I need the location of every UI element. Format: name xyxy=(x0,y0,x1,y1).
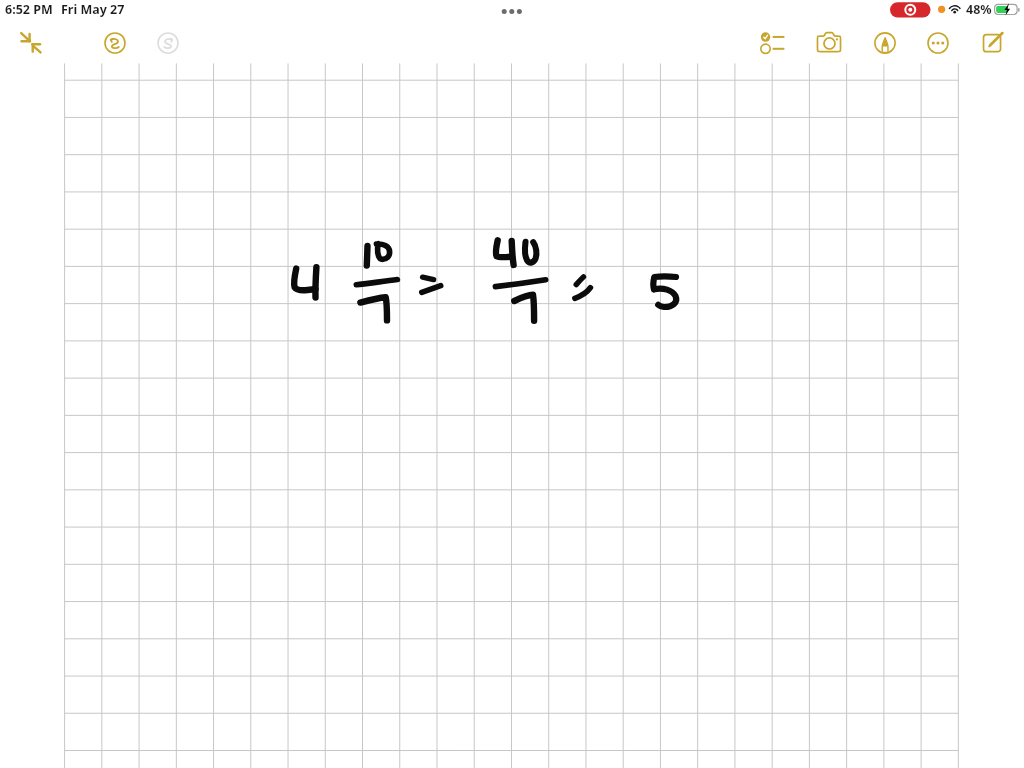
button[interactable]: Undo xyxy=(104,32,126,54)
button[interactable]: Redo xyxy=(157,32,179,54)
button[interactable]: Exit full screen xyxy=(17,31,41,55)
button[interactable]: Pen xyxy=(874,32,896,54)
staticText: 48% xyxy=(966,1,992,18)
button[interactable]: Compose xyxy=(981,31,1004,54)
staticText: Fri May 27 xyxy=(61,1,125,18)
button[interactable]: More xyxy=(927,32,949,54)
button[interactable]: Checklist xyxy=(760,32,783,55)
button[interactable]: Note page xyxy=(0,0,1024,768)
button[interactable]: Camera xyxy=(817,31,841,55)
staticText: 6:52 PM xyxy=(5,1,53,18)
